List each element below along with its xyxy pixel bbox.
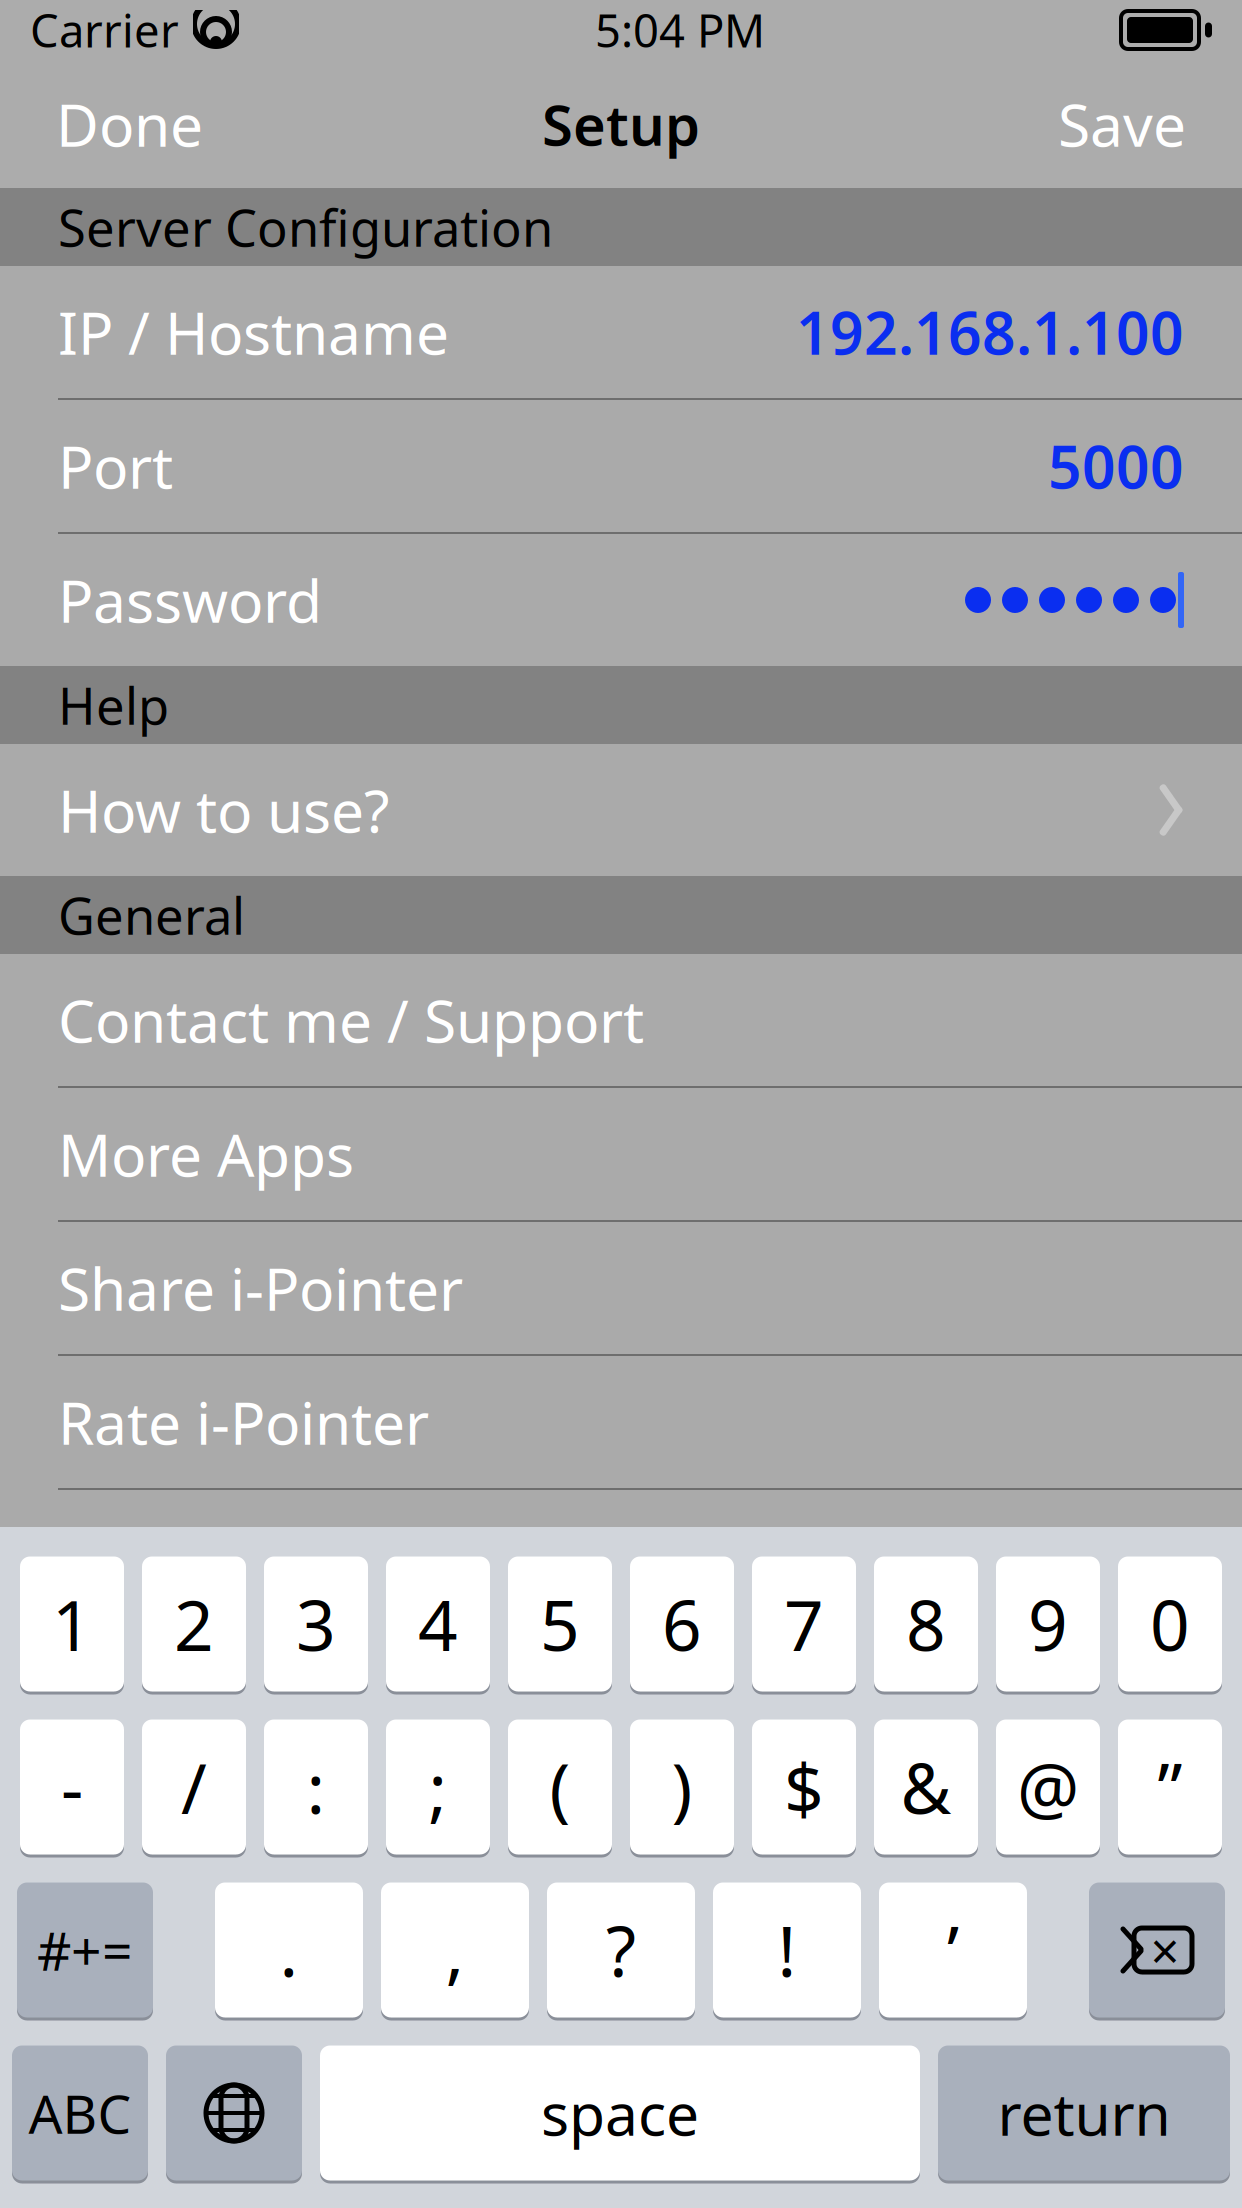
staticText: ; <box>428 1741 447 1833</box>
staticText: More Apps <box>58 1115 354 1193</box>
staticText: × <box>1150 1916 1179 1984</box>
staticText: 8 <box>906 1578 946 1670</box>
staticText: Help <box>58 671 169 739</box>
button[interactable]: 9 <box>996 1555 1100 1693</box>
staticText: 7 <box>784 1578 824 1670</box>
button[interactable]: 2 <box>142 1555 246 1693</box>
staticText: : <box>306 1741 325 1833</box>
staticText: 9 <box>1028 1578 1068 1670</box>
button[interactable]: ? <box>547 1881 695 2019</box>
button[interactable]: Rate i-Pointer <box>0 1356 1242 1488</box>
staticText: return <box>997 2074 1170 2152</box>
staticText: ? <box>606 1904 636 1996</box>
button[interactable]: @ <box>996 1718 1100 1856</box>
staticText: 6 <box>662 1578 702 1670</box>
button[interactable]: return <box>938 2044 1230 2182</box>
staticText: / <box>181 1741 207 1833</box>
staticText: - <box>61 1741 83 1833</box>
staticText: space <box>541 2074 699 2152</box>
staticText: ’ <box>947 1904 959 1996</box>
staticText: , <box>445 1904 464 1996</box>
button[interactable]: 8 <box>874 1555 978 1693</box>
staticText: 5000 <box>1048 427 1184 505</box>
button[interactable]: 1 <box>20 1555 124 1693</box>
button[interactable]: Done <box>38 73 221 175</box>
button[interactable]: Contact me / Support <box>0 954 1242 1086</box>
staticText: Port <box>58 427 173 505</box>
button[interactable]: 7 <box>752 1555 856 1693</box>
button[interactable]: Port <box>0 400 1242 532</box>
staticText: How to use? <box>58 771 389 849</box>
staticText: 192.168.1.100 <box>796 293 1184 371</box>
staticText: Setup <box>542 87 700 161</box>
staticText: Password <box>58 561 322 639</box>
button[interactable]: : <box>264 1718 368 1856</box>
staticText: @ <box>1017 1741 1079 1833</box>
button[interactable]: space <box>320 2044 920 2182</box>
button[interactable]: 0 <box>1118 1555 1222 1693</box>
button[interactable]: Share i-Pointer <box>0 1222 1242 1354</box>
button[interactable]: - <box>20 1718 124 1856</box>
button[interactable]: Password <box>0 534 1242 666</box>
staticText: Share i-Pointer <box>58 1249 463 1327</box>
button[interactable]: ’ <box>879 1881 1027 2019</box>
button[interactable]: & <box>874 1718 978 1856</box>
button[interactable]: ABC <box>12 2044 148 2182</box>
button[interactable]: 5 <box>508 1555 612 1693</box>
staticText: ! <box>777 1904 796 1996</box>
button[interactable]: ) <box>630 1718 734 1856</box>
button[interactable]: 3 <box>264 1555 368 1693</box>
staticText: $ <box>784 1741 824 1833</box>
button[interactable]: ( <box>508 1718 612 1856</box>
staticText: #+= <box>37 1915 133 1985</box>
staticText: 3 <box>296 1578 336 1670</box>
button[interactable]: . <box>215 1881 363 2019</box>
button[interactable]: #+= <box>17 1881 153 2019</box>
staticText: 0 <box>1150 1578 1190 1670</box>
staticText: Save <box>1058 85 1186 163</box>
button[interactable]: 6 <box>630 1555 734 1693</box>
button[interactable]: IP / Hostname <box>0 266 1242 398</box>
staticText: ABC <box>28 2078 131 2148</box>
staticText: Done <box>56 85 203 163</box>
staticText: ( <box>549 1741 570 1833</box>
staticText: IP / Hostname <box>58 293 449 371</box>
staticText: ) <box>671 1741 692 1833</box>
button[interactable]: ! <box>713 1881 861 2019</box>
staticText: 4 <box>418 1578 458 1670</box>
button[interactable]: More Apps <box>0 1088 1242 1220</box>
staticText: Carrier <box>30 0 179 60</box>
button[interactable]: / <box>142 1718 246 1856</box>
staticText: & <box>900 1741 951 1833</box>
button[interactable]: How to use? <box>0 744 1242 876</box>
staticText: General <box>58 881 245 949</box>
staticText: 5:04 PM <box>595 0 765 60</box>
staticText: 5 <box>540 1578 580 1670</box>
button[interactable]: ” <box>1118 1718 1222 1856</box>
staticText: 1 <box>52 1578 92 1670</box>
staticText: Rate i-Pointer <box>58 1383 429 1461</box>
staticText: 2 <box>174 1578 214 1670</box>
staticText: . <box>279 1904 298 1996</box>
button[interactable]: , <box>381 1881 529 2019</box>
button[interactable]: Next keyboard <box>166 2044 302 2182</box>
button[interactable]: Delete <box>1089 1881 1225 2019</box>
button[interactable]: $ <box>752 1718 856 1856</box>
staticText: Server Configuration <box>58 193 553 261</box>
button[interactable]: ; <box>386 1718 490 1856</box>
staticText: Contact me / Support <box>58 981 644 1059</box>
staticText: ” <box>1157 1741 1182 1833</box>
button[interactable]: Save <box>1040 73 1204 175</box>
button[interactable]: 4 <box>386 1555 490 1693</box>
